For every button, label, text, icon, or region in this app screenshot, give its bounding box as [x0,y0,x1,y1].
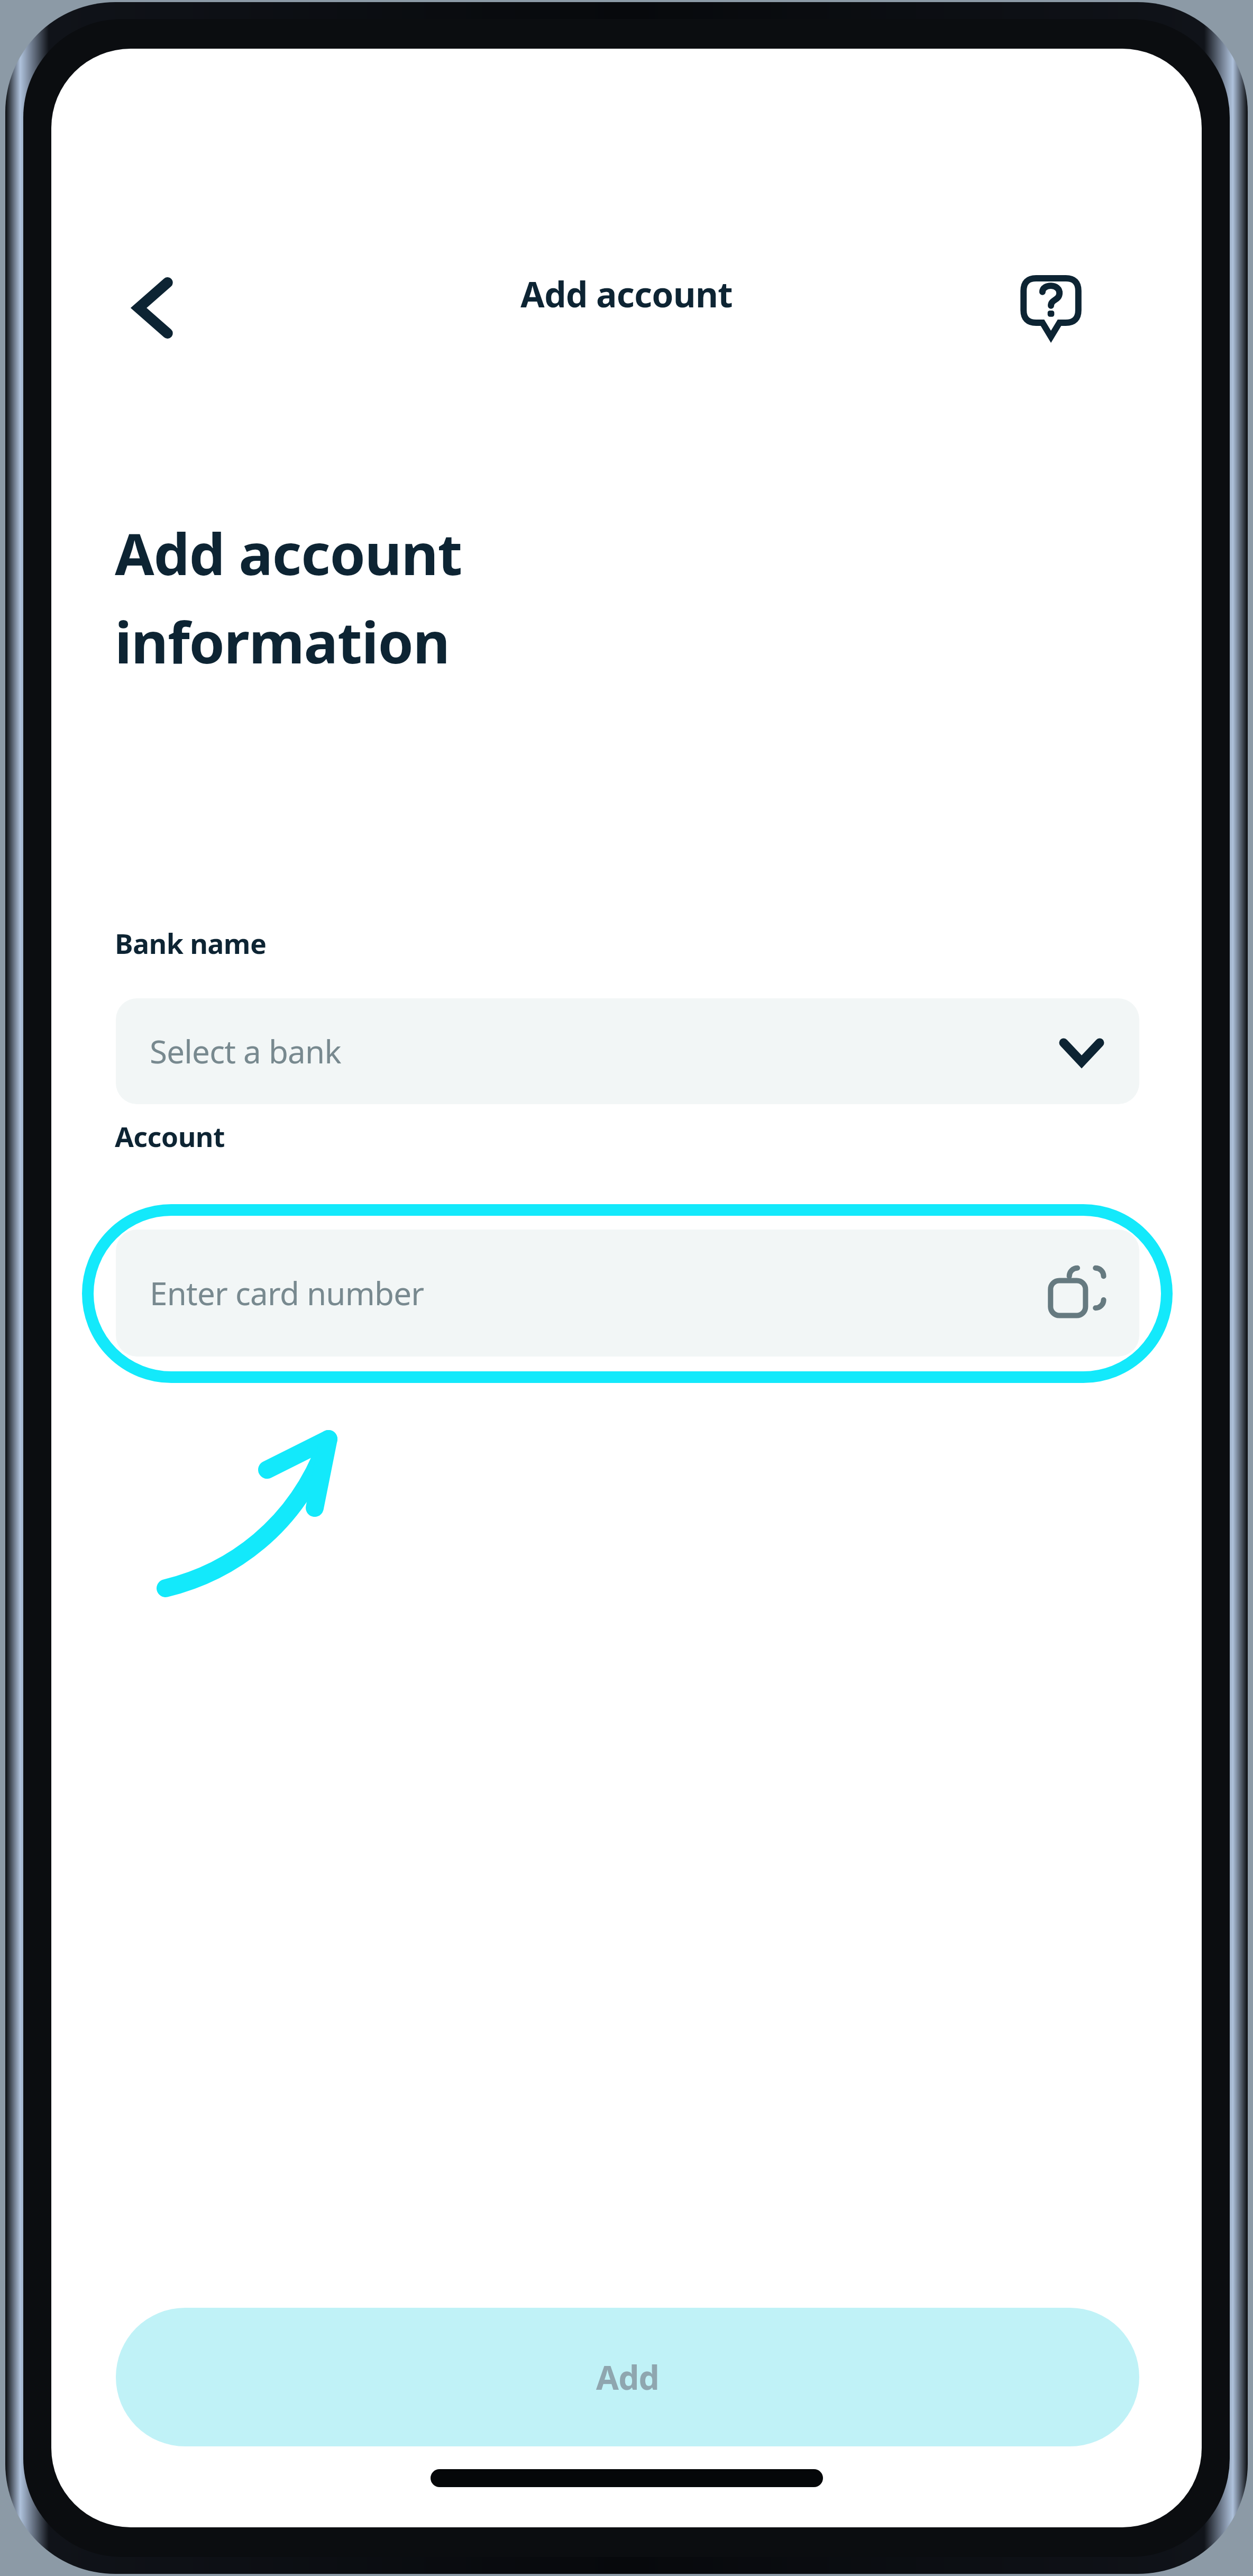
staticText: Enter card number [150,1271,424,1315]
staticText: Add account [520,270,733,317]
staticText: Add [596,2355,660,2399]
staticText: Add account [115,514,462,592]
button[interactable]: Back [104,260,199,356]
button[interactable]: Help [1003,260,1099,356]
staticText: Bank name [115,924,267,962]
staticText: Select a bank [150,1030,341,1073]
button[interactable]: Add [116,2308,1139,2446]
button[interactable]: Enter card number [116,1230,1139,1357]
staticText: information [115,603,450,680]
staticText: Account [115,1117,225,1155]
button[interactable]: Select a bank [116,998,1139,1104]
